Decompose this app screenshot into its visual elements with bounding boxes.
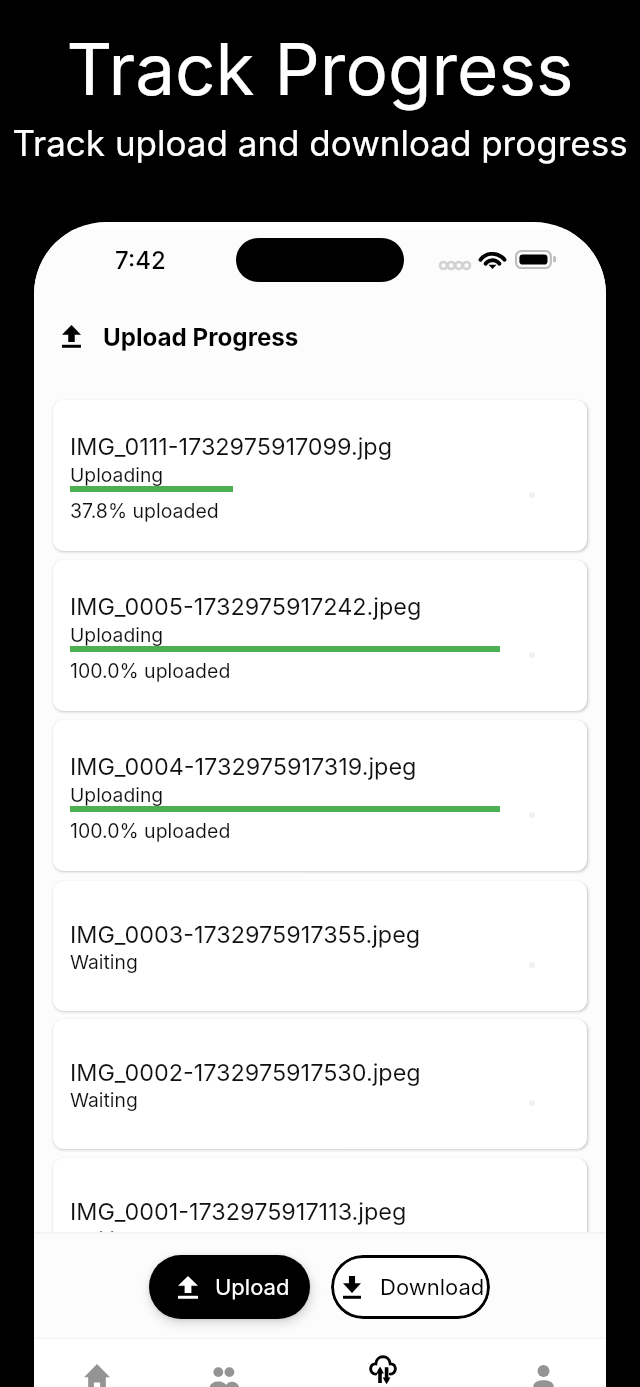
staticText: 100.0% uploaded	[70, 659, 231, 683]
staticText: Track Progress	[0, 26, 640, 112]
staticText: Waiting	[70, 1088, 138, 1111]
button[interactable]: IMG_0111-1732975917099.jpg	[53, 400, 587, 551]
staticText: Track upload and download progress	[0, 122, 640, 164]
staticText: Waiting	[70, 1227, 138, 1250]
staticText: 37.8% uploaded	[70, 499, 219, 523]
staticText: Upload Progress	[103, 323, 299, 352]
staticText: IMG_0111-1732975917099.jpg	[70, 432, 393, 460]
staticText: IMG_0003-1732975917355.jpeg	[70, 920, 421, 948]
staticText: 100.0% uploaded	[70, 819, 231, 843]
staticText: IMG_0002-1732975917530.jpeg	[70, 1058, 421, 1086]
button[interactable]: Profile	[473, 1338, 606, 1387]
staticText: IMG_0005-1732975917242.jpeg	[70, 592, 422, 620]
staticText: 7:42	[115, 246, 166, 275]
button[interactable]: IMG_0001-1732975917113.jpeg	[53, 1158, 587, 1288]
staticText: IMG_0004-1732975917319.jpeg	[70, 752, 417, 780]
button[interactable]: Shared with me	[154, 1338, 294, 1387]
button[interactable]: Download	[331, 1255, 490, 1319]
button[interactable]: IMG_0004-1732975917319.jpeg	[53, 720, 587, 871]
staticText: Upload	[215, 1274, 290, 1301]
button[interactable]: Home	[34, 1338, 167, 1387]
button[interactable]: IMG_0005-1732975917242.jpeg	[53, 560, 587, 711]
staticText: Uploading	[70, 783, 164, 806]
button[interactable]: Transfers	[313, 1338, 453, 1387]
button[interactable]: Upload	[149, 1255, 310, 1319]
staticText: Download	[380, 1274, 485, 1301]
staticText: IMG_0001-1732975917113.jpeg	[70, 1197, 407, 1225]
button[interactable]: IMG_0003-1732975917355.jpeg	[53, 881, 587, 1011]
staticText: Waiting	[70, 950, 138, 973]
staticText: Uploading	[70, 463, 164, 486]
staticText: Uploading	[70, 623, 164, 646]
button[interactable]: IMG_0002-1732975917530.jpeg	[53, 1019, 587, 1149]
